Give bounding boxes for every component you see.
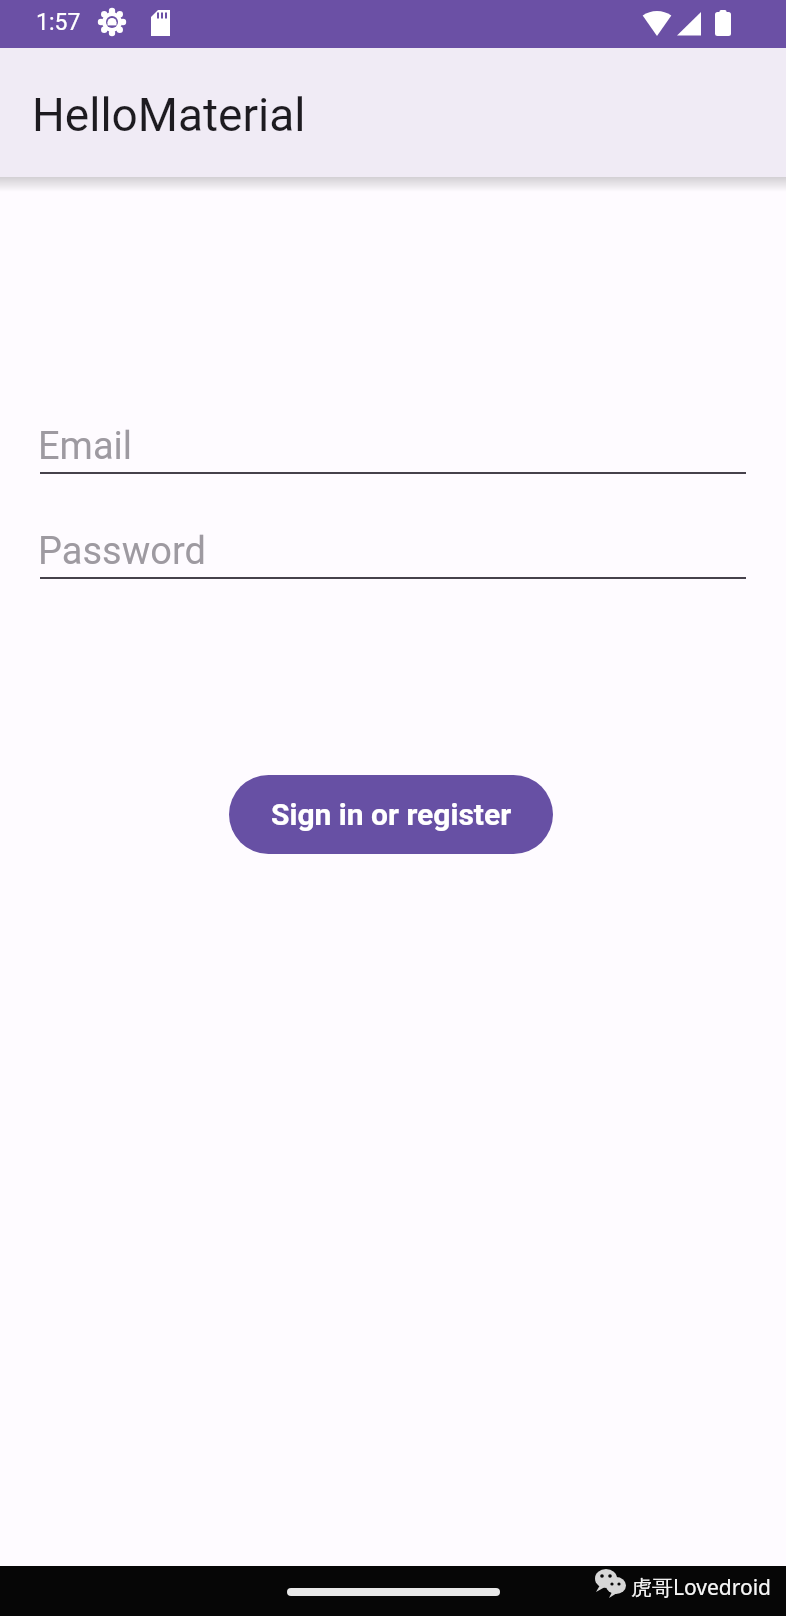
staticText: Email bbox=[38, 424, 133, 469]
staticText: 虎哥Lovedroid bbox=[631, 1573, 772, 1602]
staticText: Password bbox=[38, 529, 206, 574]
staticText: HelloMaterial bbox=[32, 88, 306, 142]
staticText: Sign in or register bbox=[271, 797, 512, 832]
staticText: 1:57 bbox=[36, 9, 81, 36]
button[interactable]: Password bbox=[40, 519, 746, 579]
button[interactable]: Sign in or register bbox=[229, 775, 553, 854]
button[interactable]: Email bbox=[40, 414, 746, 474]
